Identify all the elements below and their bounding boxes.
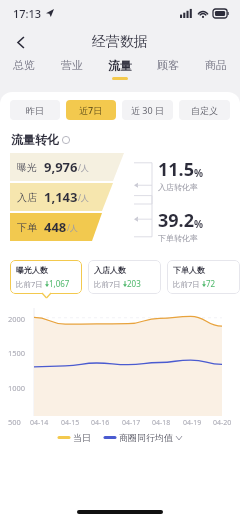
- staticText: 1,067: [49, 278, 70, 289]
- button[interactable]: Back: [6, 27, 36, 57]
- staticText: 72: [206, 278, 216, 289]
- staticText: 04-15: [61, 418, 80, 428]
- staticText: 比前7日: [173, 279, 200, 289]
- button[interactable]: 曝光: [17, 153, 89, 181]
- staticText: 下单人数: [173, 265, 205, 275]
- staticText: 2000: [8, 314, 26, 324]
- staticText: 04-17: [122, 418, 141, 428]
- staticText: 1500: [8, 348, 26, 358]
- staticText: 下单转化率: [158, 233, 198, 243]
- staticText: 04-20: [213, 418, 232, 428]
- staticText: 04-16: [91, 418, 110, 428]
- staticText: 入店: [17, 191, 37, 204]
- staticText: 自定义: [191, 105, 218, 116]
- staticText: 总览: [13, 58, 35, 72]
- staticText: 17:13: [13, 6, 42, 21]
- button[interactable]: 流量: [96, 58, 144, 86]
- button[interactable]: 近7日: [66, 100, 116, 120]
- button[interactable]: 顾客: [144, 58, 192, 86]
- button[interactable]: 下单: [17, 213, 78, 241]
- staticText: 当日: [73, 432, 91, 443]
- staticText: 39.2: [158, 208, 194, 233]
- staticText: 04-18: [152, 418, 171, 428]
- staticText: 近7日: [79, 104, 103, 116]
- staticText: /人: [78, 162, 89, 173]
- staticText: 11.5: [158, 157, 194, 182]
- staticText: 1,143: [44, 188, 78, 206]
- button[interactable]: 商品: [192, 58, 240, 86]
- staticText: /人: [67, 222, 78, 233]
- staticText: 营业: [61, 58, 83, 72]
- staticText: 比前7日: [94, 279, 121, 289]
- button[interactable]: 近 30 日: [122, 100, 173, 120]
- staticText: 04-19: [183, 418, 202, 428]
- staticText: 203: [127, 278, 141, 289]
- button[interactable]: 自定义: [179, 100, 230, 120]
- staticText: 9,976: [44, 158, 78, 176]
- staticText: 流量转化: [11, 132, 59, 147]
- staticText: 流量: [108, 58, 132, 73]
- button[interactable]: 下单人数: [167, 260, 240, 294]
- staticText: 04-14: [30, 418, 49, 428]
- button[interactable]: 曝光人数: [10, 260, 82, 294]
- staticText: 入店转化率: [158, 182, 198, 192]
- staticText: 下单: [17, 221, 37, 234]
- button[interactable]: 昨日: [10, 100, 60, 120]
- button[interactable]: 总览: [0, 58, 48, 86]
- staticText: %: [194, 166, 204, 180]
- staticText: 经营数据: [92, 33, 148, 51]
- staticText: 入店人数: [94, 265, 126, 275]
- button[interactable]: 营业: [48, 58, 96, 86]
- staticText: 曝光: [17, 161, 37, 174]
- staticText: 昨日: [26, 105, 44, 116]
- staticText: 商品: [205, 58, 227, 72]
- staticText: 448: [44, 218, 67, 236]
- staticText: 曝光人数: [16, 265, 48, 275]
- staticText: 顾客: [157, 58, 179, 72]
- staticText: /人: [78, 192, 89, 203]
- staticText: 近 30 日: [131, 104, 164, 116]
- button[interactable]: 商圈同行均值: [119, 432, 182, 443]
- button[interactable]: 入店人数: [88, 260, 161, 294]
- staticText: %: [194, 217, 204, 231]
- button[interactable]: 入店: [17, 183, 89, 211]
- staticText: 500: [8, 417, 21, 427]
- staticText: 商圈同行均值: [119, 432, 173, 443]
- staticText: 比前7日: [16, 279, 43, 289]
- staticText: 1000: [8, 383, 26, 393]
